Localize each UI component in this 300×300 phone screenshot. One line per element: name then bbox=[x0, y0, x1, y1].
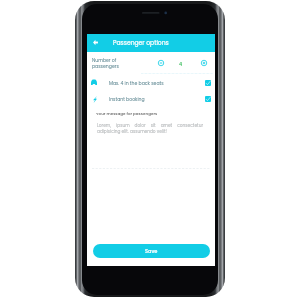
staticText: Instant booking bbox=[109, 96, 145, 102]
button[interactable]: Back bbox=[90, 37, 101, 48]
staticText: passengers bbox=[92, 63, 119, 69]
button[interactable]: Increase passengers bbox=[199, 58, 209, 68]
staticText: Lorem, ipsum dolor sit amet consectetur … bbox=[97, 122, 203, 135]
staticText: Your message for passengers bbox=[96, 111, 158, 117]
staticText: Save bbox=[145, 248, 158, 255]
staticText: Passenger options bbox=[113, 39, 169, 47]
button[interactable]: Save bbox=[93, 244, 210, 258]
button[interactable]: Instant booking bbox=[87, 91, 215, 107]
staticText: Number of bbox=[92, 57, 117, 63]
button[interactable]: Decrease passengers bbox=[156, 58, 166, 68]
button[interactable]: Max. 4 in the back seats bbox=[87, 75, 215, 91]
staticText: Max. 4 in the back seats bbox=[109, 80, 164, 86]
staticText: 4 bbox=[179, 61, 183, 68]
